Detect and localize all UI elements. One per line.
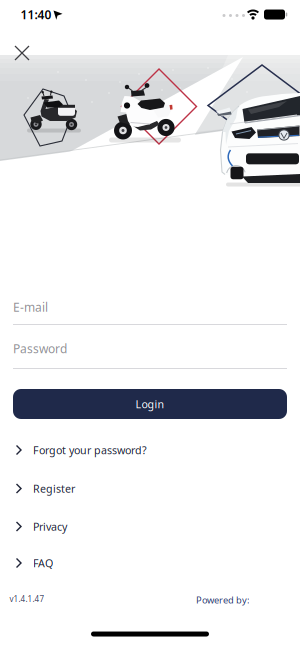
button[interactable]: FAQ xyxy=(0,548,300,578)
staticText: 11:40 xyxy=(20,6,51,22)
staticText: E-mail xyxy=(13,299,48,315)
button[interactable]: Privacy xyxy=(0,511,300,541)
button[interactable]: Powered by: xyxy=(196,594,250,606)
button[interactable]: Password xyxy=(13,337,287,371)
staticText: FAQ xyxy=(33,556,53,570)
staticText: Password xyxy=(13,340,67,356)
staticText: Powered by: xyxy=(196,594,250,606)
button[interactable]: E-mail xyxy=(13,294,287,328)
staticText: Login xyxy=(135,397,164,411)
button[interactable]: Register xyxy=(0,473,300,503)
staticText: v1.4.1.47 xyxy=(9,594,44,604)
staticText: Forgot your password? xyxy=(33,443,147,457)
button[interactable]: Login xyxy=(13,389,287,419)
staticText: Privacy xyxy=(33,519,67,534)
button[interactable]: Forgot your password? xyxy=(0,435,300,465)
staticText: Register xyxy=(33,481,75,496)
button[interactable]: Close xyxy=(14,45,30,61)
